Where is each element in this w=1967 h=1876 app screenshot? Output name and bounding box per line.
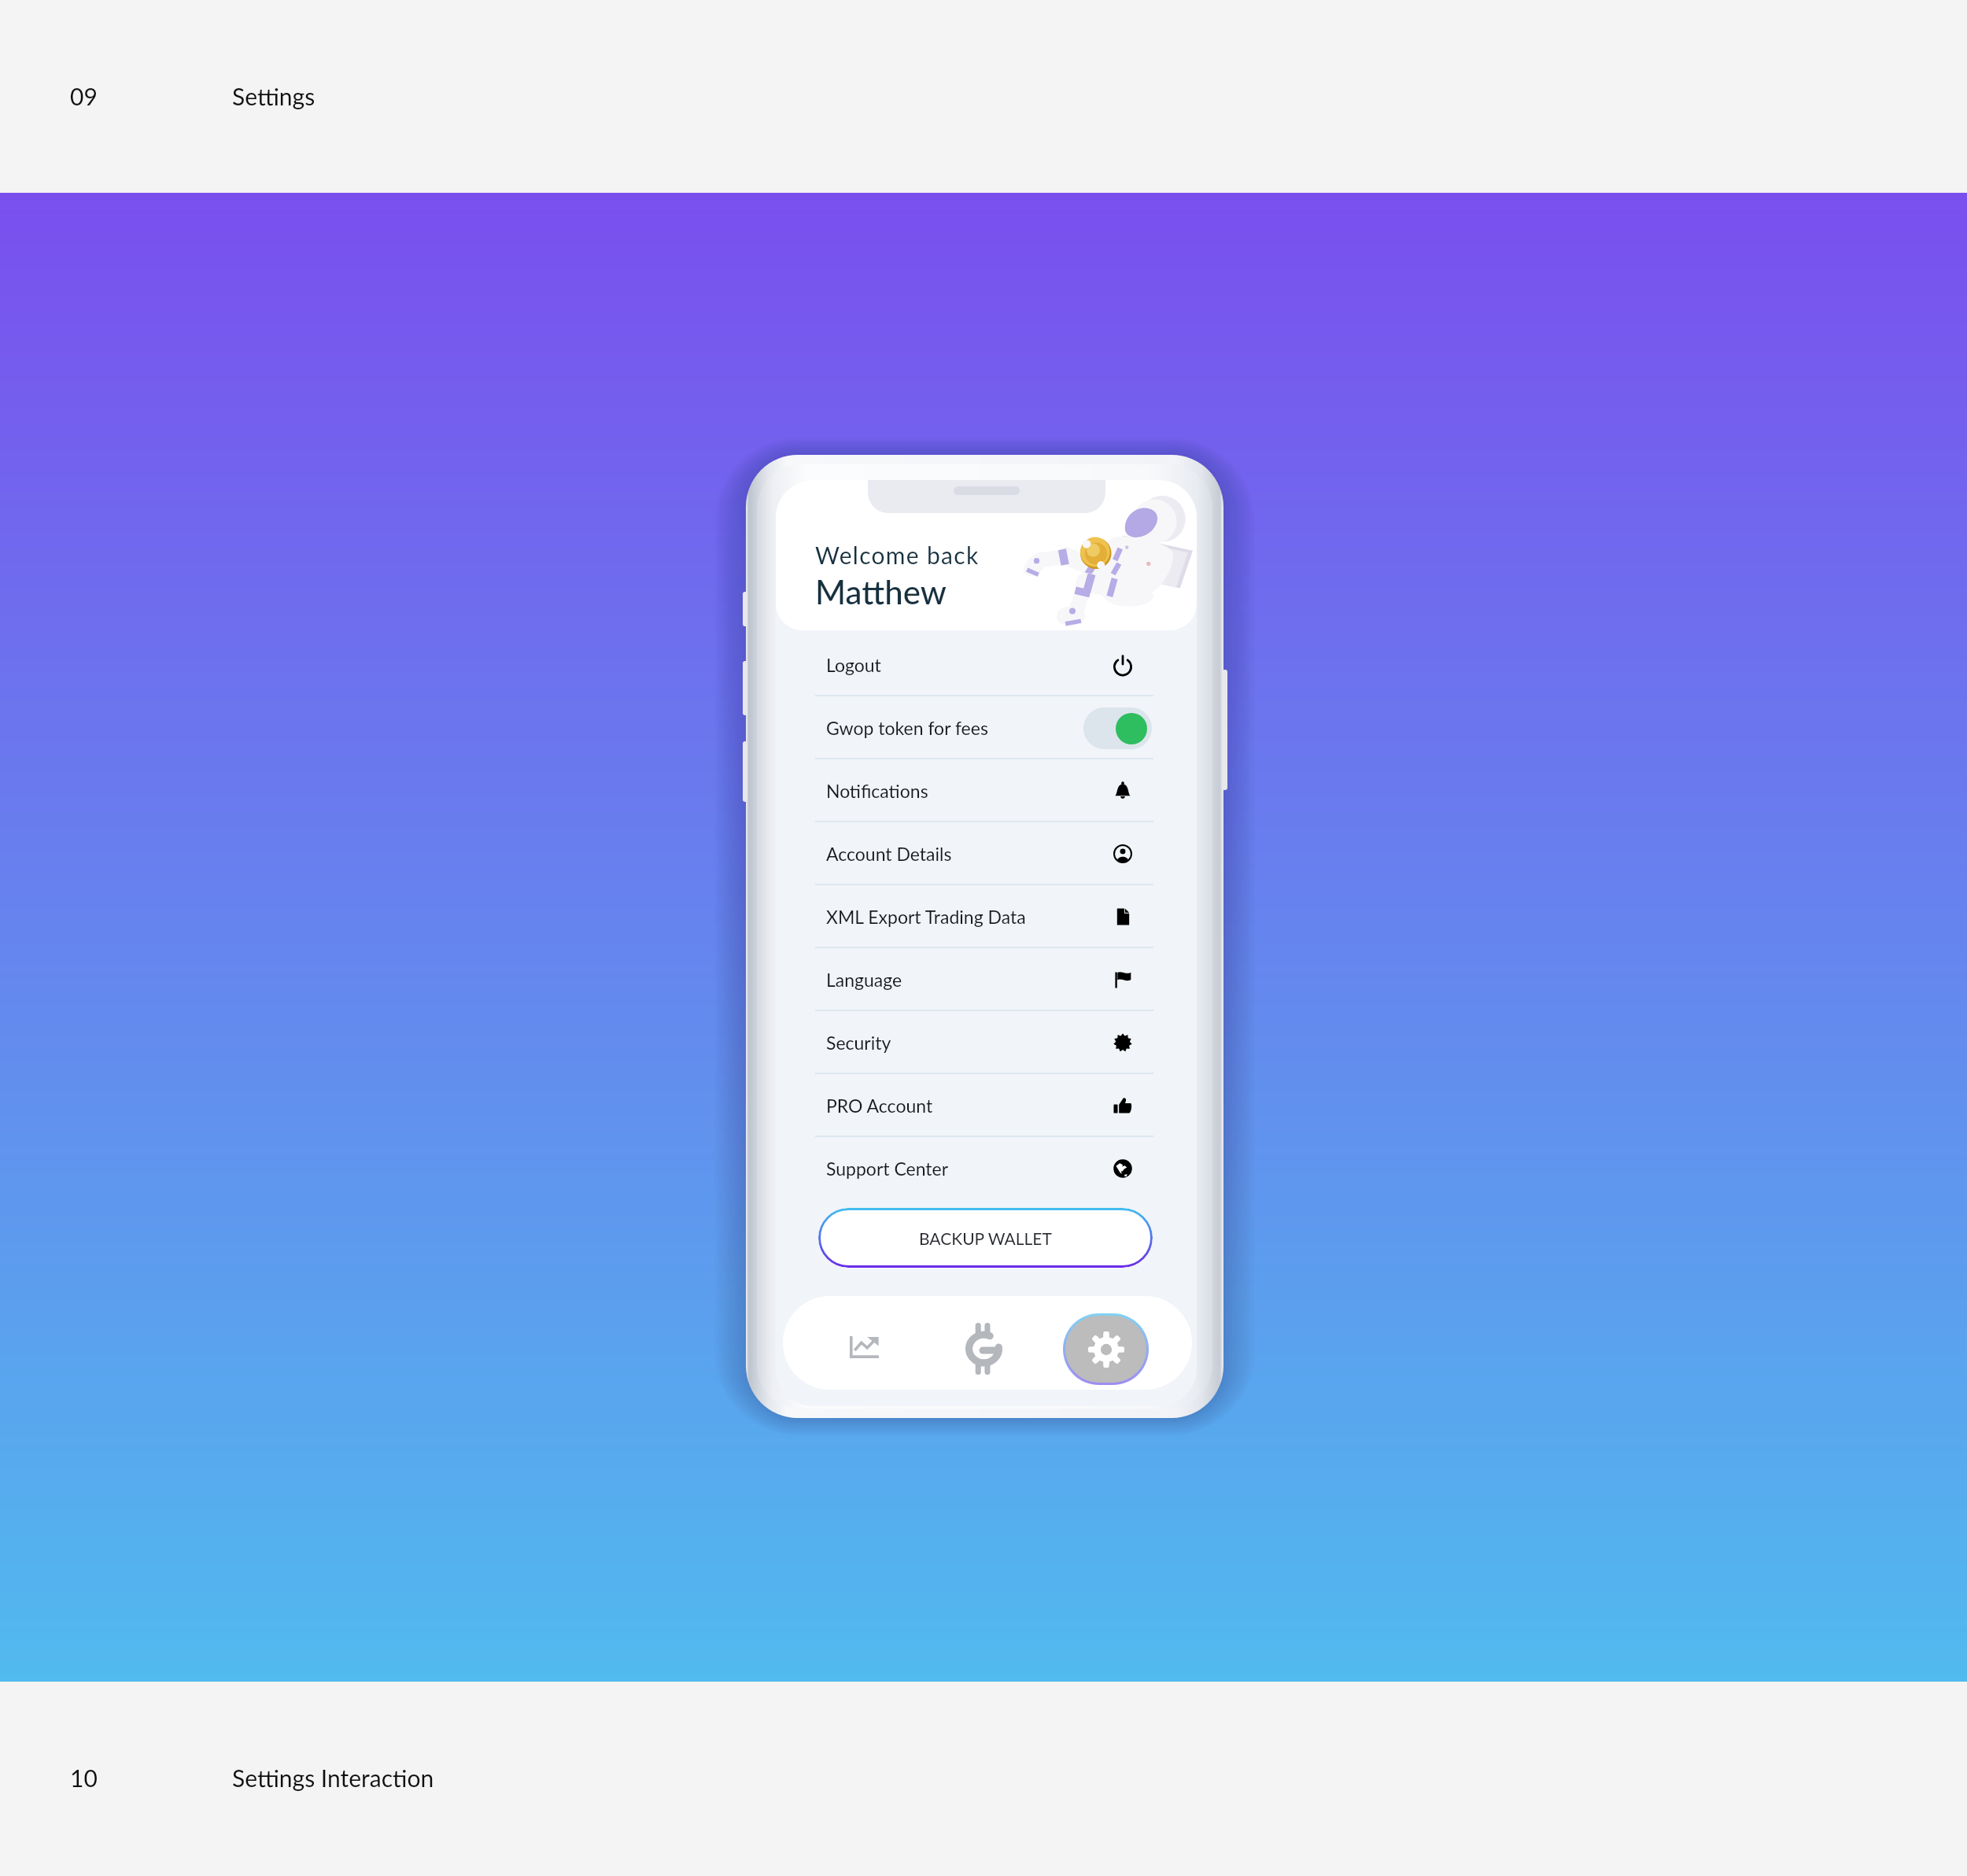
button[interactable]: Gwop token for fees xyxy=(815,696,1153,759)
button[interactable]: Security xyxy=(815,1011,1153,1074)
button[interactable]: Language xyxy=(815,948,1153,1011)
button[interactable]: BACKUP WALLET xyxy=(818,1208,1153,1268)
button[interactable]: XML Export Trading Data xyxy=(815,885,1153,948)
staticText: Logout xyxy=(826,654,881,676)
staticText: BACKUP WALLET xyxy=(919,1228,1052,1248)
staticText: 10 xyxy=(70,1763,98,1792)
button[interactable]: Support Center xyxy=(815,1137,1153,1200)
button[interactable]: PRO Account xyxy=(815,1074,1153,1137)
staticText: Welcome back xyxy=(815,541,980,569)
staticText: PRO Account xyxy=(826,1095,933,1117)
button[interactable]: Trading charts xyxy=(832,1316,895,1379)
staticText: Security xyxy=(826,1032,891,1054)
staticText: Matthew xyxy=(815,572,947,611)
staticText: Settings Interaction xyxy=(232,1763,434,1792)
staticText: Settings xyxy=(232,82,316,110)
button[interactable]: Account Details xyxy=(815,822,1153,885)
staticText: Notifications xyxy=(826,780,928,802)
staticText: 09 xyxy=(70,82,98,110)
button[interactable]: Settings xyxy=(1065,1316,1146,1383)
button[interactable]: Notifications xyxy=(815,759,1153,822)
staticText: Language xyxy=(826,969,902,991)
staticText: Gwop token for fees xyxy=(826,717,988,739)
button[interactable]: Gwop wallet xyxy=(952,1317,1015,1380)
button[interactable]: Logout xyxy=(815,633,1153,696)
staticText: Account Details xyxy=(826,843,952,865)
staticText: XML Export Trading Data xyxy=(826,906,1026,928)
staticText: Support Center xyxy=(826,1158,949,1180)
